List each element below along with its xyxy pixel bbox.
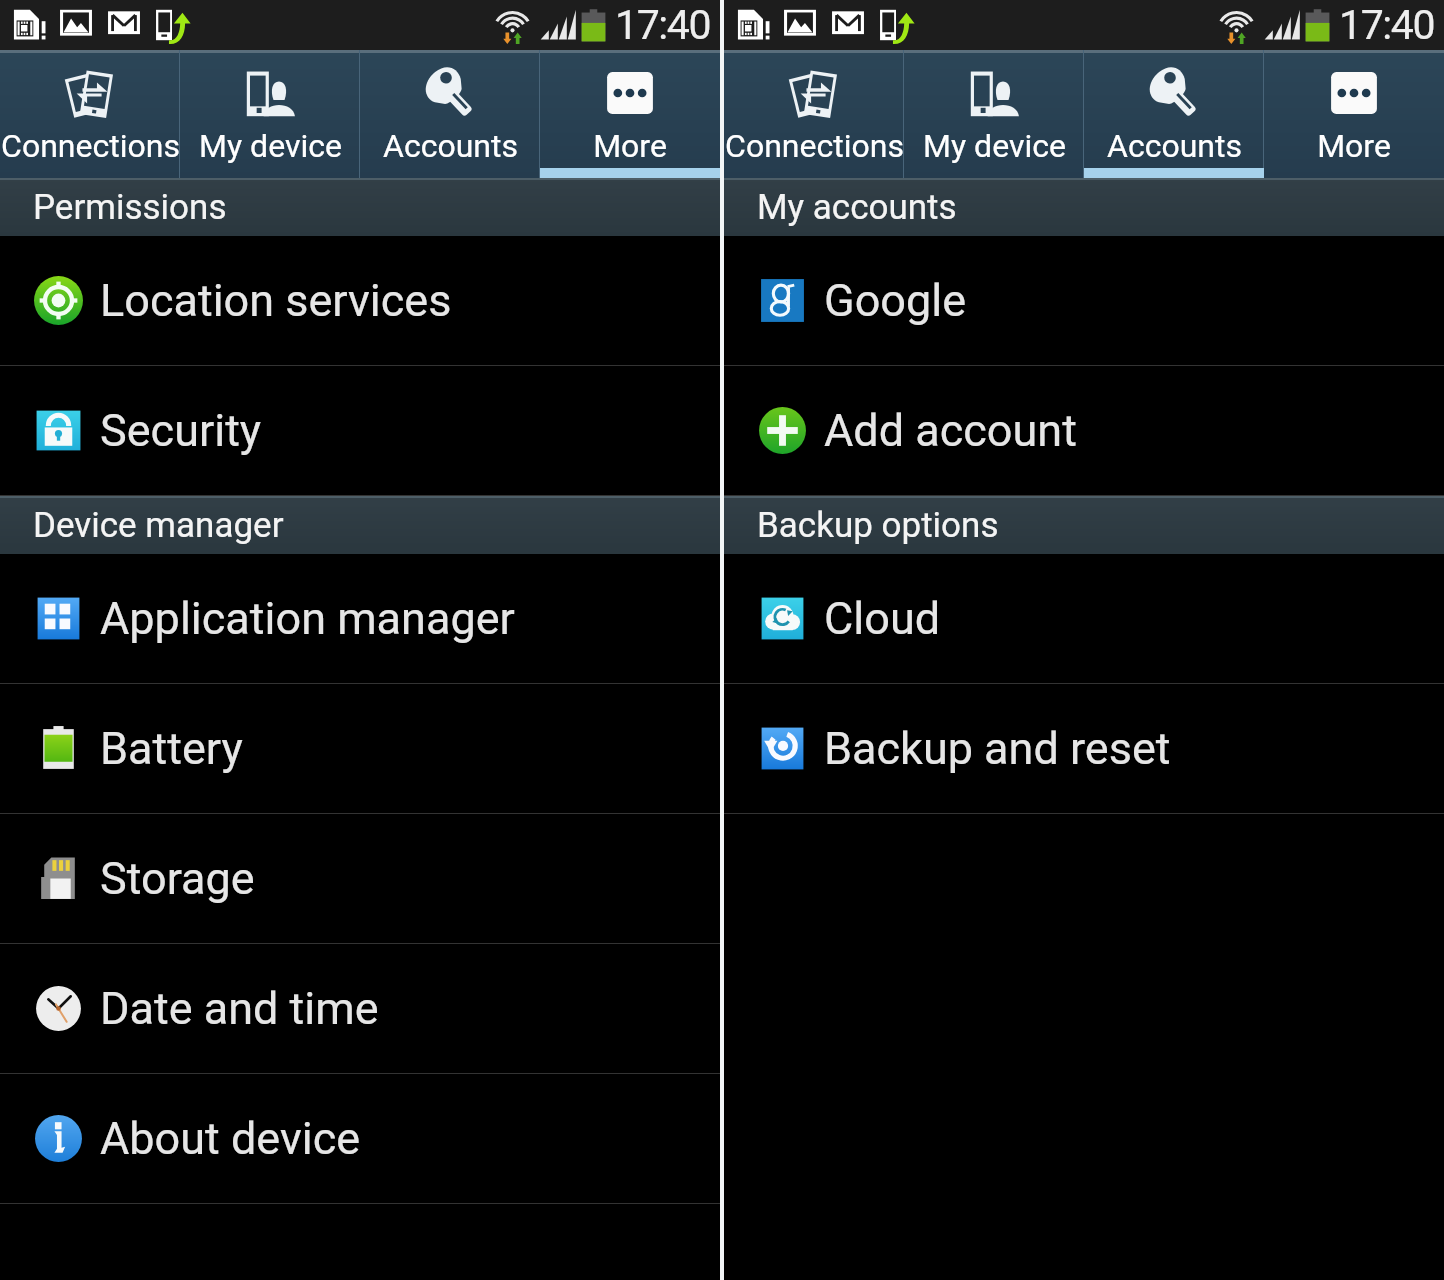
staticText: Location services: [100, 274, 452, 327]
staticText: Permissions: [33, 187, 227, 228]
staticText: Date and time: [100, 982, 379, 1035]
button[interactable]: Accounts: [1084, 50, 1264, 178]
button[interactable]: Date and time: [0, 944, 720, 1073]
button[interactable]: Cloud: [724, 554, 1444, 683]
button[interactable]: More: [1264, 50, 1444, 178]
staticText: My accounts: [757, 187, 957, 228]
staticText: Application manager: [100, 592, 515, 645]
staticText: Connections: [1, 127, 180, 165]
staticText: Battery: [100, 722, 243, 775]
staticText: My device: [923, 127, 1066, 165]
button[interactable]: My device: [180, 50, 360, 178]
button[interactable]: Accounts: [360, 50, 540, 178]
staticText: Accounts: [1107, 127, 1242, 165]
button[interactable]: My device: [904, 50, 1084, 178]
button[interactable]: About device: [0, 1074, 720, 1203]
staticText: My device: [199, 127, 342, 165]
staticText: 17:40: [615, 1, 711, 49]
staticText: 17:40: [1339, 1, 1435, 49]
staticText: Add account: [824, 404, 1077, 457]
button[interactable]: Google: [724, 236, 1444, 365]
staticText: Accounts: [383, 127, 518, 165]
button[interactable]: Battery: [0, 684, 720, 813]
staticText: Cloud: [824, 592, 941, 645]
button[interactable]: Add account: [724, 366, 1444, 495]
staticText: Connections: [725, 127, 904, 165]
staticText: Backup options: [757, 505, 999, 546]
staticText: Storage: [100, 852, 255, 905]
staticText: About device: [100, 1112, 361, 1165]
button[interactable]: More: [540, 50, 720, 178]
button[interactable]: Backup and reset: [724, 684, 1444, 813]
button[interactable]: Connections: [0, 50, 180, 178]
staticText: More: [1317, 127, 1391, 165]
button[interactable]: Security: [0, 366, 720, 495]
staticText: Backup and reset: [824, 722, 1171, 775]
staticText: Security: [100, 404, 262, 457]
staticText: More: [593, 127, 667, 165]
button[interactable]: Application manager: [0, 554, 720, 683]
button[interactable]: Connections: [724, 50, 904, 178]
staticText: Google: [824, 274, 967, 327]
button[interactable]: Location services: [0, 236, 720, 365]
button[interactable]: Storage: [0, 814, 720, 943]
staticText: Device manager: [33, 505, 284, 546]
